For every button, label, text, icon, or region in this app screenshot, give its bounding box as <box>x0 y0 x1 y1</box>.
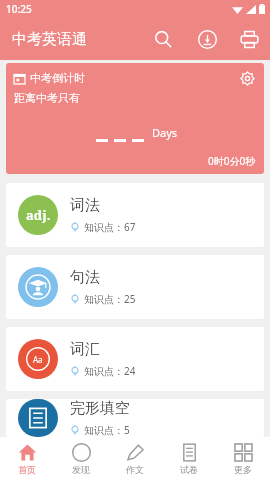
staticText: 词汇 <box>70 340 100 359</box>
button[interactable]: Download <box>188 20 226 58</box>
button[interactable]: 发现 <box>54 437 108 481</box>
staticText: 更多 <box>234 464 252 475</box>
staticText: 知识点：25 <box>84 292 136 306</box>
button[interactable]: 首页 <box>0 437 54 481</box>
button[interactable]: Settings <box>236 67 258 89</box>
button[interactable]: 更多 <box>216 437 270 481</box>
button[interactable]: 中考倒计时 <box>6 63 264 174</box>
button[interactable]: adj. <box>6 183 264 247</box>
staticText: 10:25 <box>6 2 32 16</box>
button[interactable]: Aa <box>6 327 264 391</box>
staticText: 首页 <box>18 464 36 475</box>
button[interactable]: 句法 <box>6 255 264 319</box>
button[interactable]: Print <box>232 20 266 58</box>
staticText: Days <box>152 125 178 140</box>
staticText: 中考倒计时 <box>30 71 85 85</box>
staticText: 知识点：5 <box>84 423 130 437</box>
button[interactable]: Search <box>144 20 182 58</box>
staticText: 完形填空 <box>70 399 130 418</box>
button[interactable]: 完形填空 <box>6 399 264 437</box>
staticText: 试卷 <box>180 464 198 475</box>
staticText: 距离中考只有 <box>14 91 80 105</box>
staticText: 发现 <box>72 464 90 475</box>
staticText: 中考英语通 <box>12 30 87 49</box>
staticText: 0时0分0秒 <box>208 154 256 168</box>
staticText: 词法 <box>70 196 100 215</box>
staticText: 句法 <box>70 268 100 287</box>
staticText: adj. <box>26 206 51 224</box>
staticText: 知识点：24 <box>84 364 136 378</box>
staticText: Aa <box>33 354 43 365</box>
button[interactable]: 作文 <box>108 437 162 481</box>
button[interactable]: 试卷 <box>162 437 216 481</box>
staticText: 知识点：67 <box>84 220 136 234</box>
staticText: 作文 <box>126 464 144 475</box>
